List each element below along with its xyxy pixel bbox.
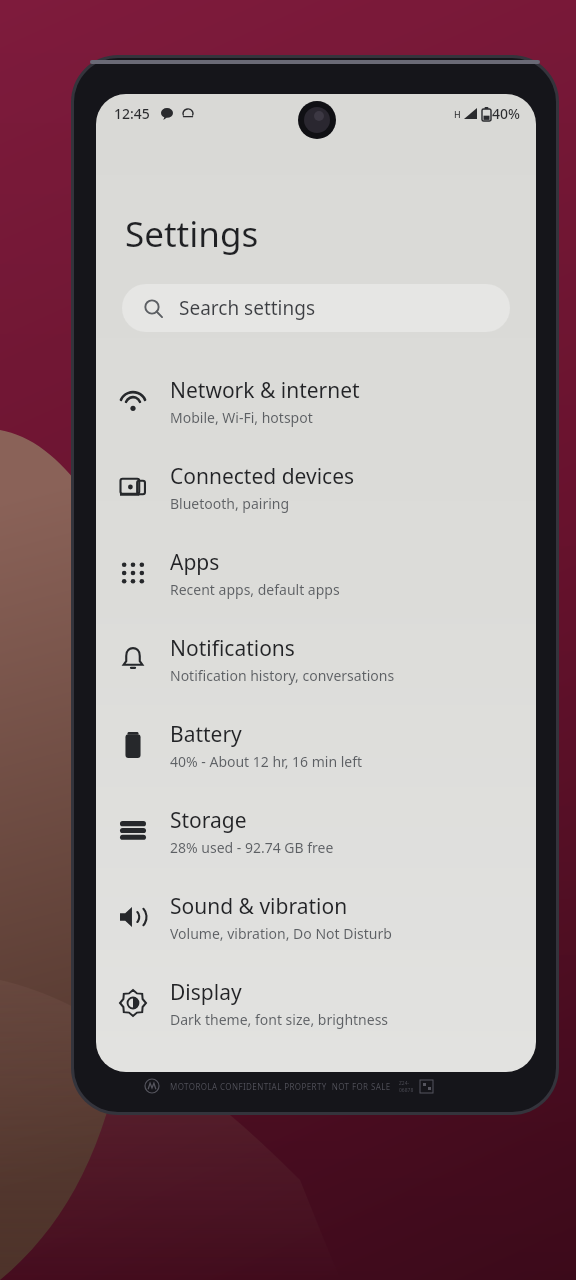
button[interactable]: Notifications [96, 616, 536, 702]
staticText: 12:45 [114, 104, 150, 123]
staticText: Storage [170, 806, 247, 835]
staticText: Network & internet [170, 376, 360, 405]
staticText: Bluetooth, pairing [170, 494, 290, 513]
button[interactable]: Connected devices [96, 444, 536, 530]
staticText: Search settings [179, 295, 316, 321]
staticText: 40% [492, 104, 520, 123]
button[interactable]: Search settings [122, 284, 510, 332]
button[interactable]: Battery [96, 702, 536, 788]
staticText: Recent apps, default apps [170, 580, 340, 599]
staticText: Mobile, Wi-Fi, hotspot [170, 408, 313, 427]
staticText: Battery [170, 720, 242, 749]
staticText: Display [170, 978, 242, 1007]
button[interactable]: Display [96, 960, 536, 1046]
button[interactable]: Sound & vibration [96, 874, 536, 960]
staticText: MOTOROLA CONFIDENTIAL PROPERTY NOT FOR S… [170, 1081, 391, 1092]
staticText: Sound & vibration [170, 892, 348, 921]
staticText: Dark theme, font size, brightness [170, 1010, 389, 1029]
button[interactable]: Storage [96, 788, 536, 874]
staticText: 40% - About 12 hr, 16 min left [170, 752, 363, 771]
staticText: Volume, vibration, Do Not Disturb [170, 924, 392, 943]
staticText: Z24- 06878 [399, 1080, 414, 1093]
button[interactable]: Apps [96, 530, 536, 616]
staticText: 28% used - 92.74 GB free [170, 838, 334, 857]
staticText: Connected devices [170, 462, 355, 491]
staticText: H [454, 108, 461, 120]
staticText: Apps [170, 548, 220, 577]
staticText: Settings [125, 210, 259, 258]
button[interactable]: Network & internet [96, 358, 536, 444]
staticText: Notifications [170, 634, 295, 663]
staticText: Notification history, conversations [170, 666, 395, 685]
